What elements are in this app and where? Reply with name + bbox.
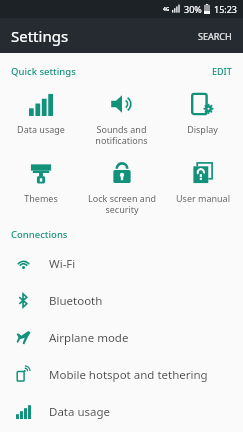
other: Wi-Fi [16, 256, 31, 271]
button[interactable]: Sounds and notifications [81, 90, 162, 149]
button[interactable]: User manual [162, 159, 243, 206]
other: Bluetooth [16, 293, 31, 308]
other: Data usage [16, 404, 31, 419]
staticText: Mobile hotspot and tethering [49, 367, 208, 383]
other: Mobile hotspot and tethering [16, 367, 31, 382]
staticText: Quick settings [11, 65, 76, 78]
button[interactable]: Mobile hotspot and tethering [0, 356, 243, 393]
button[interactable]: Lock screen and security [81, 159, 162, 218]
staticText: SEARCH [198, 30, 232, 42]
button[interactable]: Wi-Fi [0, 245, 243, 282]
staticText: Wi-Fi [49, 256, 76, 272]
other: Display [191, 92, 215, 116]
button[interactable]: Bluetooth [0, 282, 243, 319]
other: Sounds and notifications [110, 92, 134, 116]
staticText: Display [187, 123, 218, 135]
other: Data usage [29, 92, 53, 116]
staticText: Data usage [17, 123, 65, 135]
staticText: Connections [11, 228, 68, 241]
staticText: Data usage [49, 404, 111, 420]
staticText: Themes [24, 192, 58, 204]
button[interactable]: SEARCH [187, 22, 243, 50]
staticText: Lock screen and security [88, 192, 156, 216]
staticText: Airplane mode [49, 330, 129, 346]
other: Lock screen and security [110, 161, 134, 185]
staticText: Bluetooth [49, 293, 103, 309]
staticText: 30% [184, 3, 202, 15]
other: Themes [29, 161, 53, 185]
button[interactable]: Airplane mode [0, 319, 243, 356]
staticText: Sounds and notifications [95, 123, 148, 147]
staticText: EDIT [212, 65, 232, 77]
staticText: 4G [163, 6, 170, 13]
other: Airplane mode [16, 330, 31, 345]
button[interactable]: Data usage [0, 393, 243, 430]
button[interactable]: Display [162, 90, 243, 137]
staticText: 15:23 [214, 3, 238, 15]
staticText: User manual [176, 192, 230, 204]
button[interactable]: Data usage [0, 90, 81, 137]
other: User manual [191, 161, 215, 185]
button[interactable]: Themes [0, 159, 81, 206]
button[interactable]: EDIT [201, 62, 243, 80]
staticText: Settings [11, 26, 69, 46]
